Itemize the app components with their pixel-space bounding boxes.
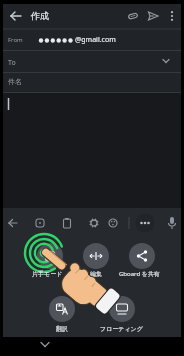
button[interactable] — [3, 4, 31, 29]
button[interactable] — [135, 213, 155, 233]
button[interactable] — [49, 296, 75, 322]
button[interactable]: From — [3, 29, 181, 51]
button[interactable] — [129, 243, 155, 269]
staticText: 作成 — [31, 10, 49, 21]
button[interactable] — [31, 214, 49, 232]
staticText: フローティング — [100, 325, 143, 333]
staticText: @gmail.com — [75, 35, 116, 45]
button[interactable] — [30, 337, 60, 353]
button[interactable] — [145, 8, 161, 24]
button[interactable] — [58, 214, 76, 232]
button[interactable]: 件名 — [3, 73, 181, 93]
staticText: To — [8, 58, 16, 68]
button[interactable] — [3, 93, 181, 208]
staticText: From — [8, 36, 23, 44]
button[interactable] — [109, 296, 135, 322]
staticText: Gboard を共有 — [119, 270, 160, 278]
staticText: 件名 — [8, 77, 22, 86]
button[interactable] — [85, 214, 103, 232]
button[interactable] — [4, 214, 22, 232]
button[interactable] — [163, 214, 181, 232]
staticText: 編集 — [90, 270, 102, 278]
button[interactable]: To — [3, 51, 181, 73]
button[interactable] — [104, 214, 122, 232]
staticText: 片手モード — [32, 270, 63, 278]
button[interactable] — [83, 243, 109, 269]
button[interactable] — [125, 8, 141, 24]
button[interactable] — [165, 8, 179, 24]
button[interactable] — [37, 243, 63, 269]
staticText: 翻訳 — [56, 325, 68, 333]
